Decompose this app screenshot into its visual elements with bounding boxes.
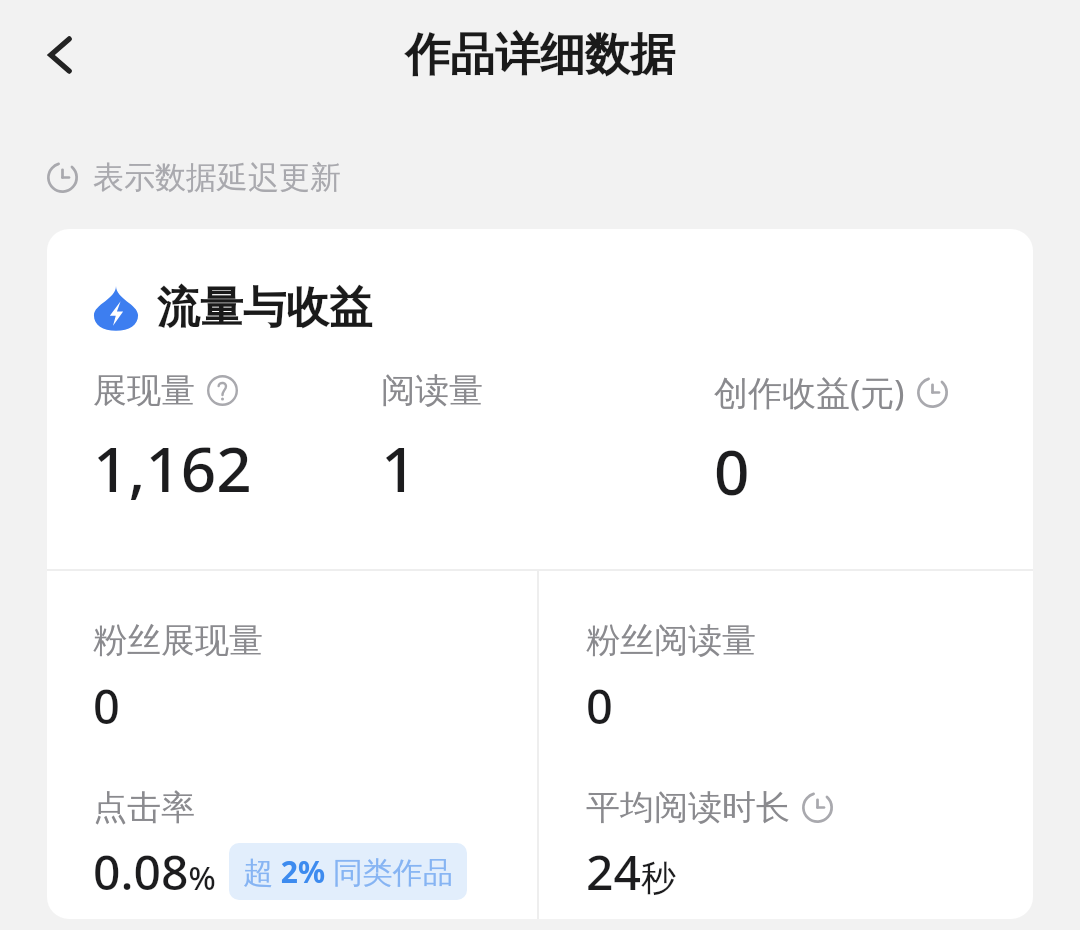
button[interactable]: 表示数据延迟更新 xyxy=(47,158,341,197)
staticText: 0.08% xyxy=(93,839,216,904)
staticText: 0 xyxy=(586,674,613,738)
staticText: 创作收益(元) xyxy=(714,369,905,415)
button[interactable]: 流量与收益 xyxy=(47,229,1033,919)
staticText: 作品详细数据 xyxy=(405,27,675,84)
staticText: 流量与收益 xyxy=(157,281,372,335)
button[interactable]: 平均阅读时长 xyxy=(586,786,1033,904)
staticText: 粉丝阅读量 xyxy=(586,619,756,662)
button[interactable]: 粉丝展现量 xyxy=(93,619,540,738)
button[interactable]: Back xyxy=(18,13,102,97)
staticText: 1,162 xyxy=(93,426,252,510)
button[interactable]: 创作收益(元) xyxy=(714,369,1033,513)
staticText: 超 2% 同类作品 xyxy=(243,851,453,892)
staticText: 粉丝展现量 xyxy=(93,619,263,662)
staticText: 展现量 xyxy=(93,369,195,412)
staticText: 0 xyxy=(93,674,120,738)
staticText: 24秒 xyxy=(586,839,676,904)
staticText: 表示数据延迟更新 xyxy=(93,158,341,197)
staticText: 点击率 xyxy=(93,786,195,829)
button[interactable]: 点击率 xyxy=(93,786,540,904)
staticText: 平均阅读时长 xyxy=(586,786,790,829)
button[interactable]: 流量与收益 xyxy=(93,281,372,335)
staticText: 0 xyxy=(714,429,750,513)
staticText: 1 xyxy=(381,426,417,510)
button[interactable]: 粉丝阅读量 xyxy=(586,619,1033,738)
staticText: 阅读量 xyxy=(381,369,483,412)
button[interactable]: 阅读量 xyxy=(381,369,704,510)
button[interactable]: 展现量 xyxy=(93,369,375,510)
